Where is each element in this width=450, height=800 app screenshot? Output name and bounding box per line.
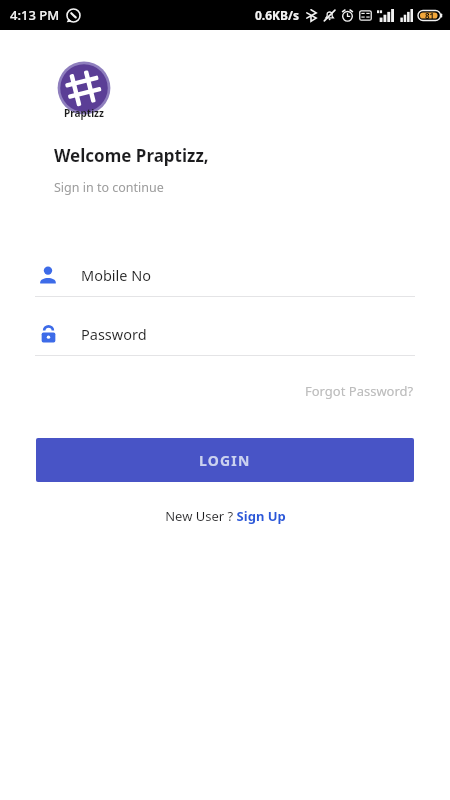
button[interactable]: Password	[35, 313, 415, 356]
staticText: New User ? Sign Up	[165, 507, 286, 525]
other: Password	[39, 325, 58, 344]
staticText: 4:13 PM	[10, 6, 60, 24]
staticText: Welcome Praptizz,	[54, 144, 209, 167]
other: Mobile number	[38, 265, 58, 285]
button[interactable]: Forgot Password?	[303, 378, 416, 404]
staticText: Password	[81, 324, 147, 344]
button[interactable]: New User ? Sign Up	[159, 504, 292, 528]
staticText: 0.6KB/s	[255, 7, 300, 23]
staticText: Sign in to continue	[54, 179, 164, 196]
button[interactable]: LOGIN	[36, 438, 414, 482]
staticText: Mobile No	[81, 265, 152, 285]
staticText: Praptizz	[64, 106, 104, 120]
button[interactable]: Mobile number	[35, 254, 415, 297]
staticText: 81	[425, 10, 435, 21]
staticText: LOGIN	[199, 451, 251, 470]
